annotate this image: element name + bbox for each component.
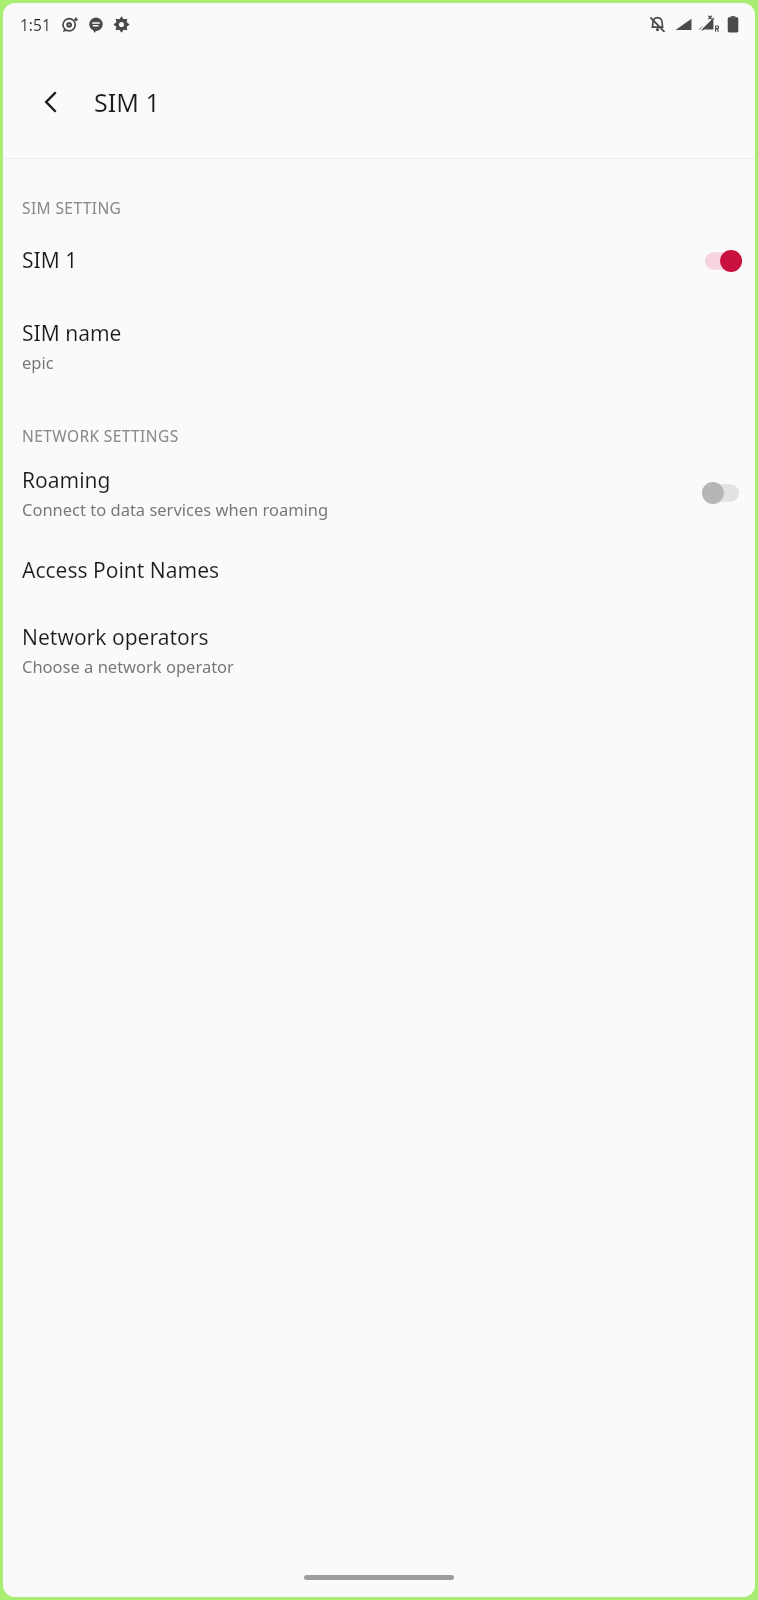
staticText: epic (22, 351, 54, 373)
staticText: Choose a network operator (22, 655, 234, 677)
staticText: SIM 1 (22, 246, 78, 275)
staticText: SIM 1 (94, 85, 160, 119)
button[interactable]: Back (25, 76, 77, 128)
staticText: SIM name (22, 319, 122, 348)
staticText: Network operators (22, 623, 209, 652)
button[interactable]: Roaming (3, 460, 755, 526)
staticText: NETWORK SETTINGS (22, 425, 179, 446)
staticText: Access Point Names (22, 556, 220, 585)
button[interactable]: SIM 1 (3, 240, 755, 281)
staticText: SIM SETTING (22, 197, 122, 218)
button[interactable]: Access Point Names (3, 550, 755, 591)
button[interactable]: Network operators (3, 617, 755, 683)
button[interactable]: SIM name (3, 313, 755, 379)
staticText: 1:51 (20, 14, 51, 35)
button[interactable]: Off (705, 482, 739, 504)
staticText: Roaming (22, 466, 111, 495)
button[interactable]: On (705, 250, 739, 272)
staticText: Connect to data services when roaming (22, 498, 329, 520)
